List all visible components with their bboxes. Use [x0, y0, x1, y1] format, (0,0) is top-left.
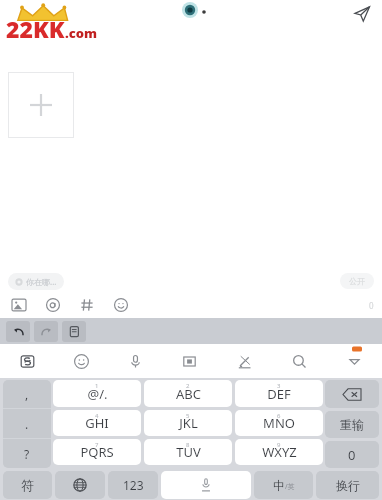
staticText: 7 [95, 441, 99, 449]
button[interactable]: Undo [6, 321, 30, 342]
button[interactable]: 7 [53, 439, 141, 465]
button[interactable]: 4 [53, 410, 141, 436]
button[interactable]: Send [350, 2, 374, 26]
staticText: 0 [369, 300, 374, 311]
button[interactable]: 换行 [316, 471, 379, 499]
button[interactable]: 5 [144, 410, 232, 436]
staticText: . [25, 416, 29, 432]
staticText: 3 [277, 382, 281, 390]
button[interactable]: . [3, 409, 51, 438]
button[interactable]: Voice [108, 344, 162, 378]
button[interactable]: 6 [235, 410, 323, 436]
button[interactable]: Mention [42, 294, 64, 316]
staticText: JKL [179, 414, 198, 432]
staticText: @/. [87, 385, 108, 403]
button[interactable]: Language [55, 471, 105, 499]
staticText: 5 [186, 412, 190, 420]
button[interactable]: Handwriting [217, 344, 272, 378]
staticText: 公开 [349, 276, 365, 286]
button[interactable]: ? [3, 439, 51, 468]
button[interactable]: 符 [3, 471, 52, 499]
staticText: /英 [285, 482, 295, 492]
button[interactable]: Space [161, 471, 251, 499]
staticText: , [25, 386, 29, 402]
staticText: PQRS [80, 443, 114, 461]
button[interactable]: Search [272, 344, 327, 378]
button[interactable]: Topic [76, 294, 98, 316]
button[interactable]: 重输 [325, 411, 379, 438]
button[interactable]: 0 [325, 441, 379, 468]
staticText: MNO [263, 414, 295, 432]
staticText: 中 [273, 478, 285, 493]
staticText: 123 [123, 477, 144, 493]
button[interactable]: 1 [53, 380, 141, 407]
staticText: 4 [95, 412, 99, 420]
staticText: 重输 [340, 417, 364, 432]
button[interactable]: , [3, 380, 51, 408]
staticText: ? [24, 446, 30, 462]
staticText: .com [65, 24, 98, 42]
staticText: 你在哪... [26, 276, 57, 287]
button[interactable]: Delete [325, 380, 379, 408]
button[interactable]: Sogou [0, 344, 54, 378]
staticText: 2 [186, 382, 190, 390]
staticText: 9 [277, 441, 281, 449]
button[interactable]: Add image [8, 72, 74, 138]
button[interactable]: 中 [254, 471, 313, 499]
button[interactable]: Redo [34, 321, 58, 342]
staticText: 6 [277, 412, 281, 420]
button[interactable]: Visibility [340, 273, 374, 289]
button[interactable]: 2 [144, 380, 232, 407]
staticText: 22KK [6, 13, 65, 44]
staticText: 0 [348, 446, 356, 464]
button[interactable]: 你在哪... [8, 273, 64, 290]
button[interactable]: 8 [144, 439, 232, 465]
button[interactable]: 9 [235, 439, 323, 465]
staticText: DEF [267, 385, 291, 403]
button[interactable]: More [327, 344, 382, 378]
button[interactable]: Clipboard [162, 344, 217, 378]
staticText: TUV [176, 443, 201, 461]
button[interactable]: 123 [108, 471, 158, 499]
staticText: GHI [85, 414, 109, 432]
button[interactable]: Emoji [110, 294, 132, 316]
button[interactable]: Paste [62, 321, 86, 342]
staticText: 符 [21, 477, 34, 493]
staticText: 8 [186, 441, 190, 449]
staticText: ABC [176, 385, 201, 403]
button[interactable]: Emoji [54, 344, 108, 378]
button[interactable]: Image [8, 294, 30, 316]
staticText: 1 [95, 382, 99, 390]
button[interactable]: 3 [235, 380, 323, 407]
staticText: WXYZ [262, 443, 297, 461]
staticText: 换行 [336, 478, 360, 493]
